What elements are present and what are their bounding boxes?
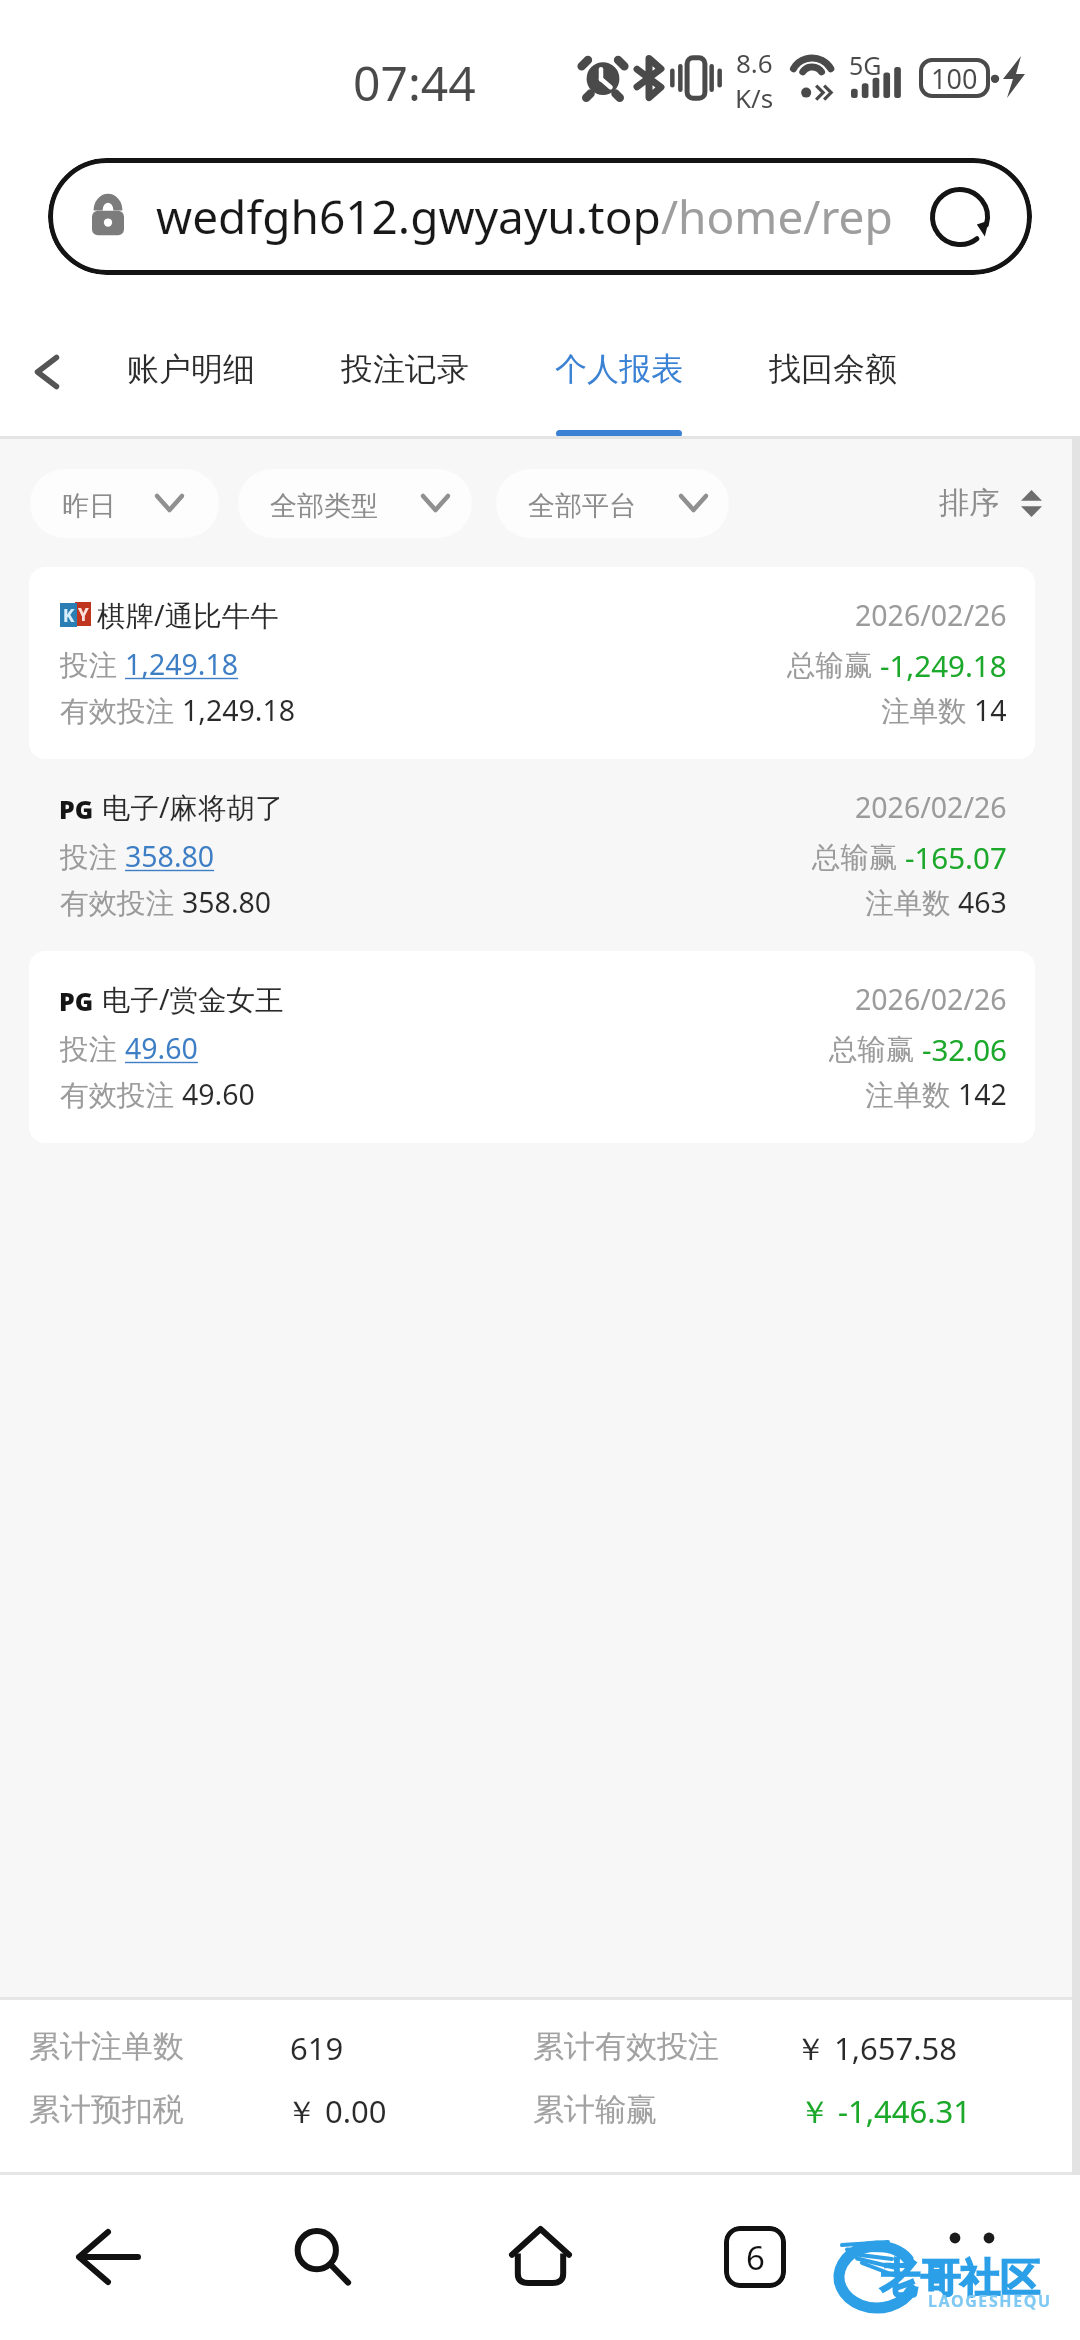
staticText: 2026/02/26 [855, 980, 1007, 1016]
staticText: 累计预扣税 [29, 2090, 184, 2129]
staticText: 注单数 [865, 883, 958, 919]
staticText: 142 [958, 1075, 1007, 1111]
button[interactable]: PG [29, 759, 1035, 951]
staticText: PG [59, 792, 94, 820]
staticText: 6 [746, 2235, 765, 2280]
staticText: PG [59, 984, 94, 1012]
staticText: K [63, 604, 75, 627]
staticText: 棋牌/通比牛牛 [97, 596, 279, 632]
staticText: 总输赢 [787, 645, 880, 681]
staticText: 1,249.18 [125, 645, 239, 681]
staticText: 358.80 [182, 883, 272, 919]
staticText: 找回余额 [769, 349, 897, 389]
staticText: 2026/02/26 [855, 788, 1007, 824]
staticText: /home/rep [661, 185, 893, 248]
staticText: wedfgh612.gwyayu.top [156, 185, 661, 248]
staticText: ￥ -1,446.31 [799, 2090, 972, 2132]
staticText: 投注 [60, 645, 125, 681]
staticText: 07:44 [353, 50, 476, 115]
staticText: -32.06 [922, 1029, 1007, 1065]
staticText: 619 [290, 2027, 344, 2069]
staticText: 投注记录 [341, 349, 469, 389]
button[interactable]: Reload page [914, 171, 1006, 263]
staticText: 总输赢 [829, 1029, 922, 1065]
staticText: 全部平台 [528, 489, 636, 523]
staticText: -1,249.18 [880, 645, 1007, 681]
staticText: ￥ 0.00 [286, 2090, 387, 2132]
button[interactable]: 个人报表 [512, 302, 726, 439]
staticText: 14 [974, 691, 1007, 727]
staticText: 全部类型 [270, 489, 378, 523]
staticText: 49.60 [182, 1075, 255, 1111]
button[interactable]: wedfgh612.gwyayu.top [48, 158, 1032, 275]
staticText: K/s [735, 80, 774, 115]
staticText: 有效投注 [60, 1075, 182, 1111]
button[interactable]: More options [895, 2175, 1045, 2340]
button[interactable]: Home [468, 2175, 612, 2340]
staticText: 累计输赢 [533, 2090, 657, 2129]
staticText: 昨日 [62, 489, 116, 523]
button[interactable]: 找回余额 [726, 302, 940, 439]
staticText: 2026/02/26 [855, 596, 1007, 632]
staticText: ￥ 1,657.58 [795, 2027, 958, 2069]
button[interactable]: 投注记录 [298, 302, 512, 439]
button[interactable]: Back [0, 302, 84, 439]
staticText: 5G [849, 48, 882, 82]
staticText: 投注 [60, 837, 125, 873]
staticText: 463 [958, 883, 1007, 919]
staticText: 注单数 [865, 1075, 958, 1111]
button[interactable]: 全部类型 [238, 469, 472, 538]
staticText: 100 [931, 60, 978, 97]
staticText: 账户明细 [127, 349, 255, 389]
staticText: 电子/麻将胡了 [102, 788, 284, 824]
button[interactable]: 账户明细 [84, 302, 298, 439]
staticText: 总输赢 [812, 837, 905, 873]
staticText: 电子/赏金女王 [102, 980, 284, 1016]
staticText: 有效投注 [60, 883, 182, 919]
staticText: 注单数 [881, 691, 974, 727]
staticText: 49.60 [125, 1029, 198, 1065]
staticText: Y [78, 603, 89, 626]
staticText: 排序 [939, 484, 999, 522]
button[interactable]: Y [29, 567, 1035, 759]
staticText: LAOGESHEQU [928, 2290, 1052, 2312]
staticText: 1,249.18 [182, 691, 296, 727]
button[interactable]: 全部平台 [496, 469, 729, 538]
button[interactable]: Tabs [683, 2175, 827, 2340]
staticText: 个人报表 [555, 349, 683, 389]
staticText: 老哥社区 [880, 2253, 1040, 2303]
staticText: 358.80 [125, 837, 215, 873]
button[interactable]: 昨日 [30, 469, 219, 538]
staticText: 累计注单数 [29, 2027, 184, 2066]
staticText: -165.07 [905, 837, 1007, 873]
button[interactable]: 排序 [933, 470, 1048, 536]
staticText: 累计有效投注 [533, 2027, 719, 2066]
staticText: 投注 [60, 1029, 125, 1065]
staticText: 8.6 [736, 45, 773, 80]
staticText: 有效投注 [60, 691, 182, 727]
button[interactable]: Search [250, 2175, 394, 2340]
button[interactable]: Back [36, 2175, 180, 2340]
button[interactable]: PG [29, 951, 1035, 1143]
